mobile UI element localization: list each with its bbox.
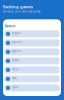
staticText: 8 levels: [11, 43, 16, 45]
staticText: 12 levels: [11, 34, 17, 36]
button[interactable]: Logic grid: [4, 84, 59, 91]
staticText: 9 levels: [11, 88, 16, 90]
staticText: 18 levels: [11, 79, 17, 81]
staticText: 20 levels: [11, 52, 17, 54]
staticText: Logic grid: [11, 86, 18, 88]
staticText: Exciting games: [3, 4, 33, 9]
staticText: Number rush: [11, 50, 21, 52]
staticText: Word puzzle: [11, 32, 20, 34]
staticText: Games: [5, 24, 15, 28]
staticText: 10 levels: [11, 70, 17, 72]
staticText: Color sort: [11, 68, 19, 70]
staticText: Memory match: [11, 41, 22, 43]
button[interactable]: Memory match: [4, 39, 59, 46]
button[interactable]: Color sort: [4, 66, 59, 73]
staticText: Enhance your skills every day: [3, 10, 40, 13]
button[interactable]: Quick math: [4, 57, 59, 64]
button[interactable]: Word puzzle: [4, 30, 59, 37]
button[interactable]: Number rush: [4, 48, 59, 55]
staticText: Tile slide: [11, 77, 16, 79]
staticText: Quick math: [11, 59, 19, 61]
button[interactable]: Tile slide: [4, 75, 59, 82]
staticText: 15 levels: [11, 61, 17, 63]
